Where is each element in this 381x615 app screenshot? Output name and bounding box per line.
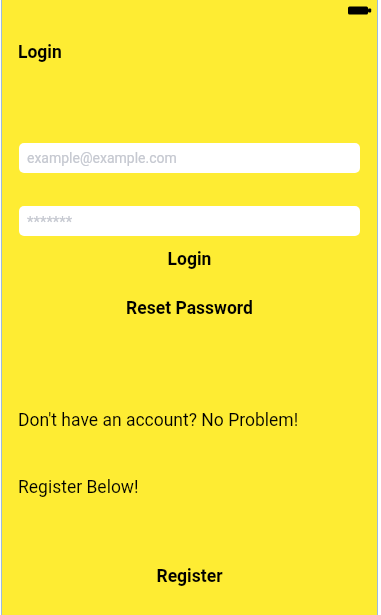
button[interactable]: Password bbox=[19, 206, 360, 236]
staticText: ******* bbox=[27, 213, 73, 231]
staticText: Reset Password bbox=[2, 298, 377, 319]
button[interactable]: Register bbox=[2, 563, 377, 590]
button[interactable]: Email address bbox=[19, 143, 360, 173]
staticText: Login bbox=[18, 42, 62, 63]
staticText: Login bbox=[2, 249, 377, 270]
staticText: Register bbox=[2, 566, 377, 587]
staticText: Don't have an account? No Problem! bbox=[18, 410, 299, 431]
staticText: Register Below! bbox=[18, 477, 139, 498]
button[interactable]: Reset Password bbox=[2, 295, 377, 322]
staticText: example@example.com bbox=[27, 150, 177, 166]
other: Battery full bbox=[348, 6, 374, 15]
button[interactable]: Login bbox=[2, 246, 377, 273]
